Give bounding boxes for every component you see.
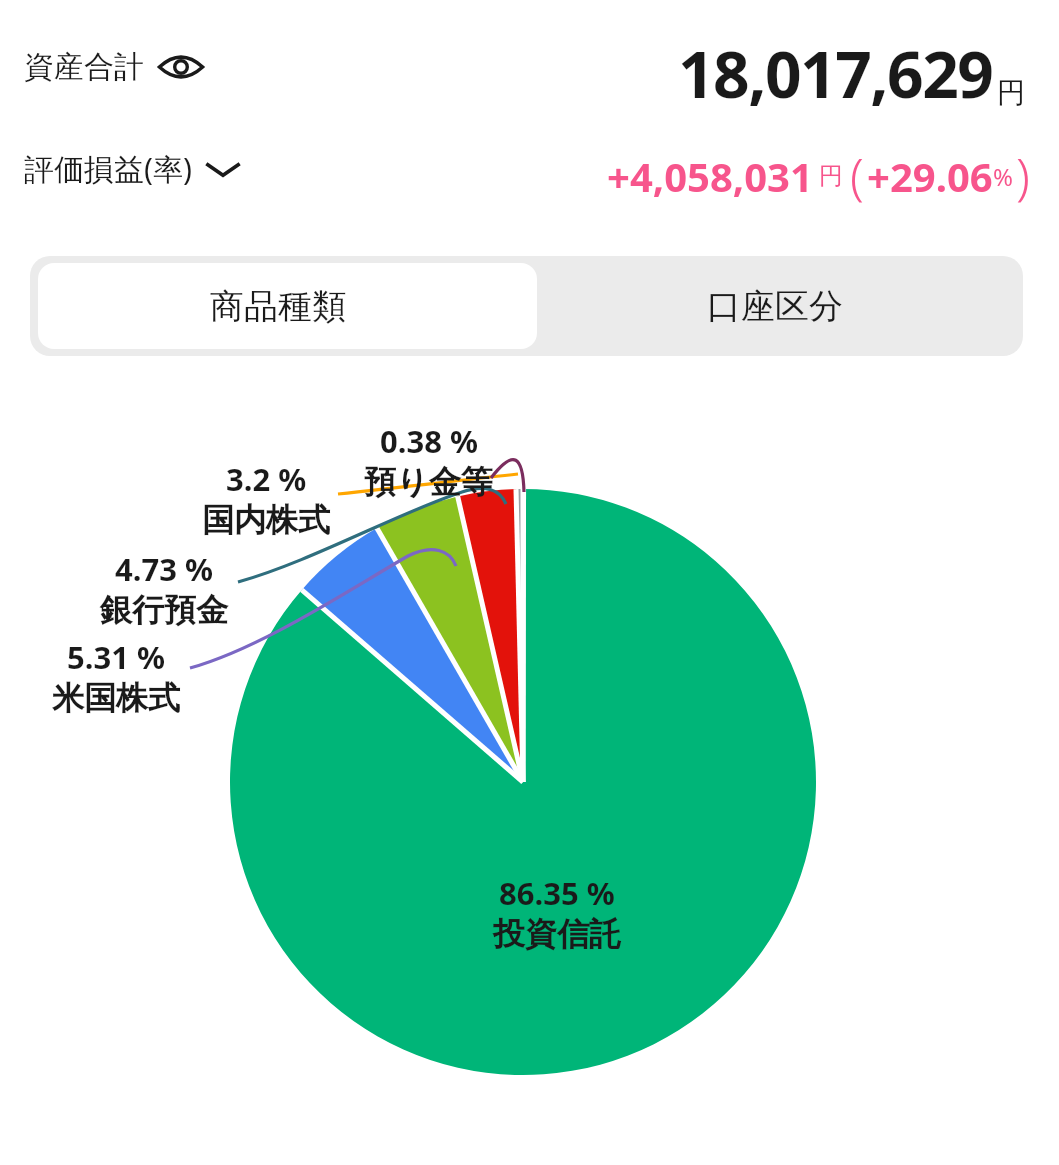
staticText: 投資信託 <box>493 914 621 954</box>
staticText: 資産合計 <box>24 48 144 86</box>
staticText: ( <box>850 142 864 210</box>
staticText: +4,058,031 <box>607 149 813 203</box>
staticText: 円 <box>997 75 1025 110</box>
staticText: 18,017,629 <box>678 30 993 117</box>
button[interactable]: 口座区分 <box>526 256 1023 356</box>
staticText: ) <box>1016 142 1030 210</box>
button[interactable]: 評価損益(率) 切替 <box>24 148 242 189</box>
staticText: 評価損益(率) <box>24 148 192 189</box>
staticText: 国内株式 <box>202 500 330 540</box>
staticText: 4.73 % <box>115 548 213 590</box>
staticText: % <box>993 160 1013 193</box>
staticText: 米国株式 <box>52 678 180 718</box>
staticText: +29.06 <box>867 149 993 203</box>
staticText: 口座区分 <box>707 285 843 328</box>
staticText: 商品種類 <box>210 285 346 328</box>
staticText: 5.31 % <box>67 636 165 678</box>
staticText: 円 <box>819 161 843 191</box>
button[interactable]: 商品種類 <box>30 256 526 356</box>
staticText: 86.35 % <box>499 872 615 914</box>
staticText: 0.38 % <box>380 420 478 462</box>
staticText: 3.2 % <box>226 458 307 500</box>
button[interactable]: 資産合計 表示切替 <box>24 48 204 86</box>
staticText: 銀行預金 <box>100 590 228 630</box>
staticText: 預り金等 <box>364 462 493 502</box>
